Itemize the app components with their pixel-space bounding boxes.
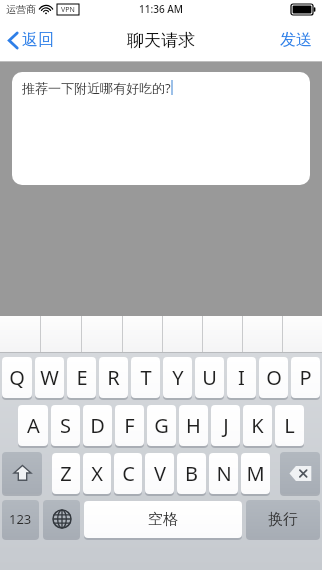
button[interactable]: Return <box>246 500 320 538</box>
button[interactable]: Shift <box>2 452 42 494</box>
staticText: U <box>202 364 217 391</box>
staticText: W <box>40 364 59 391</box>
button[interactable]: L <box>275 405 304 446</box>
button[interactable]: U <box>195 357 224 398</box>
button[interactable]: A <box>18 405 48 446</box>
button[interactable]: Z <box>52 453 80 494</box>
button[interactable] <box>203 316 242 353</box>
button[interactable]: R <box>99 357 128 398</box>
staticText: H <box>186 412 201 439</box>
staticText: 空格 <box>148 510 178 529</box>
button[interactable]: J <box>211 405 240 446</box>
button[interactable]: 推荐一下附近哪有好吃的? <box>12 72 310 185</box>
button[interactable]: S <box>51 405 80 446</box>
button[interactable]: B <box>177 453 206 494</box>
staticText: F <box>124 412 135 439</box>
button[interactable]: D <box>83 405 112 446</box>
button[interactable]: H <box>179 405 208 446</box>
staticText: X <box>91 460 103 487</box>
button[interactable]: I <box>227 357 256 398</box>
staticText: N <box>216 460 232 487</box>
button[interactable]: K <box>243 405 272 446</box>
staticText: 11:36 AM <box>139 2 183 16</box>
button[interactable]: Switch keyboard <box>43 500 80 538</box>
button[interactable] <box>82 316 122 353</box>
staticText: Z <box>60 460 72 487</box>
staticText: 123 <box>9 510 32 528</box>
button[interactable]: Backspace <box>280 452 320 494</box>
button[interactable] <box>163 316 202 353</box>
button[interactable] <box>243 316 282 353</box>
staticText: M <box>246 460 265 487</box>
staticText: 运营商 <box>6 3 36 16</box>
staticText: 返回 <box>22 30 54 50</box>
button[interactable]: G <box>147 405 176 446</box>
staticText: Q <box>9 364 25 391</box>
staticText: 聊天请求 <box>127 30 195 51</box>
button[interactable] <box>123 316 162 353</box>
button[interactable]: Y <box>163 357 192 398</box>
button[interactable]: C <box>114 453 142 494</box>
button[interactable]: F <box>115 405 144 446</box>
button[interactable] <box>0 316 40 353</box>
staticText: 推荐一下附近哪有好吃的? <box>22 79 171 97</box>
staticText: L <box>284 412 295 439</box>
button[interactable] <box>41 316 81 353</box>
button[interactable]: P <box>291 357 320 398</box>
button[interactable]: 空格 <box>84 501 242 538</box>
staticText: A <box>27 412 40 439</box>
staticText: T <box>140 364 152 391</box>
staticText: 发送 <box>280 30 312 50</box>
staticText: J <box>223 412 229 439</box>
staticText: G <box>154 412 169 439</box>
button[interactable]: O <box>259 357 288 398</box>
button[interactable]: E <box>67 357 96 398</box>
button[interactable]: M <box>241 453 270 494</box>
staticText: O <box>266 364 282 391</box>
button[interactable]: Q <box>2 357 32 398</box>
button[interactable]: 返回 <box>0 24 64 56</box>
staticText: R <box>107 364 120 391</box>
button[interactable]: X <box>83 453 111 494</box>
button[interactable]: T <box>131 357 160 398</box>
button[interactable]: W <box>35 357 64 398</box>
staticText: 换行 <box>268 510 298 529</box>
staticText: S <box>60 412 71 439</box>
staticText: Y <box>172 364 184 391</box>
button[interactable]: N <box>209 453 238 494</box>
button[interactable] <box>283 316 322 353</box>
button[interactable]: 发送 <box>270 22 322 58</box>
staticText: V <box>154 460 166 487</box>
staticText: B <box>185 460 198 487</box>
staticText: C <box>122 460 135 487</box>
staticText: E <box>76 364 88 391</box>
staticText: K <box>251 412 264 439</box>
staticText: I <box>238 364 245 391</box>
button[interactable]: Numbers <box>2 500 39 538</box>
staticText: D <box>90 412 105 439</box>
button[interactable]: V <box>145 453 174 494</box>
staticText: VPN <box>61 5 75 15</box>
staticText: P <box>299 364 312 391</box>
